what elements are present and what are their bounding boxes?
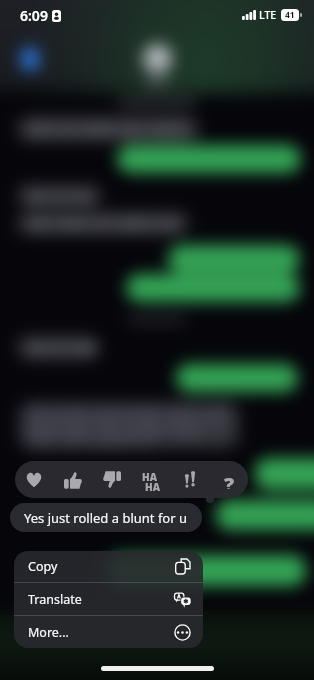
button[interactable]: More... <box>14 616 203 648</box>
button[interactable]: Thumbs down <box>92 461 131 498</box>
button[interactable]: Exclamation <box>170 461 209 498</box>
staticText: Yes just rolled a blunt for u <box>24 509 188 527</box>
button[interactable]: Yes just rolled a blunt for u <box>10 503 202 532</box>
staticText: Copy <box>28 558 58 575</box>
staticText: HA <box>142 470 157 484</box>
staticText: LTE <box>259 8 277 22</box>
button[interactable]: Haha <box>131 461 170 498</box>
button[interactable]: Thumbs up <box>53 461 92 498</box>
staticText: HA <box>145 480 160 494</box>
staticText: 6:09 <box>20 6 48 25</box>
staticText: Translate <box>28 591 82 608</box>
button[interactable]: Love <box>15 461 53 498</box>
staticText: More... <box>28 624 69 641</box>
staticText: 41 <box>285 9 295 21</box>
button[interactable]: Translate <box>14 583 203 615</box>
button[interactable]: Question <box>209 461 248 498</box>
button[interactable]: Copy <box>14 551 203 582</box>
staticText: ? <box>224 471 235 489</box>
